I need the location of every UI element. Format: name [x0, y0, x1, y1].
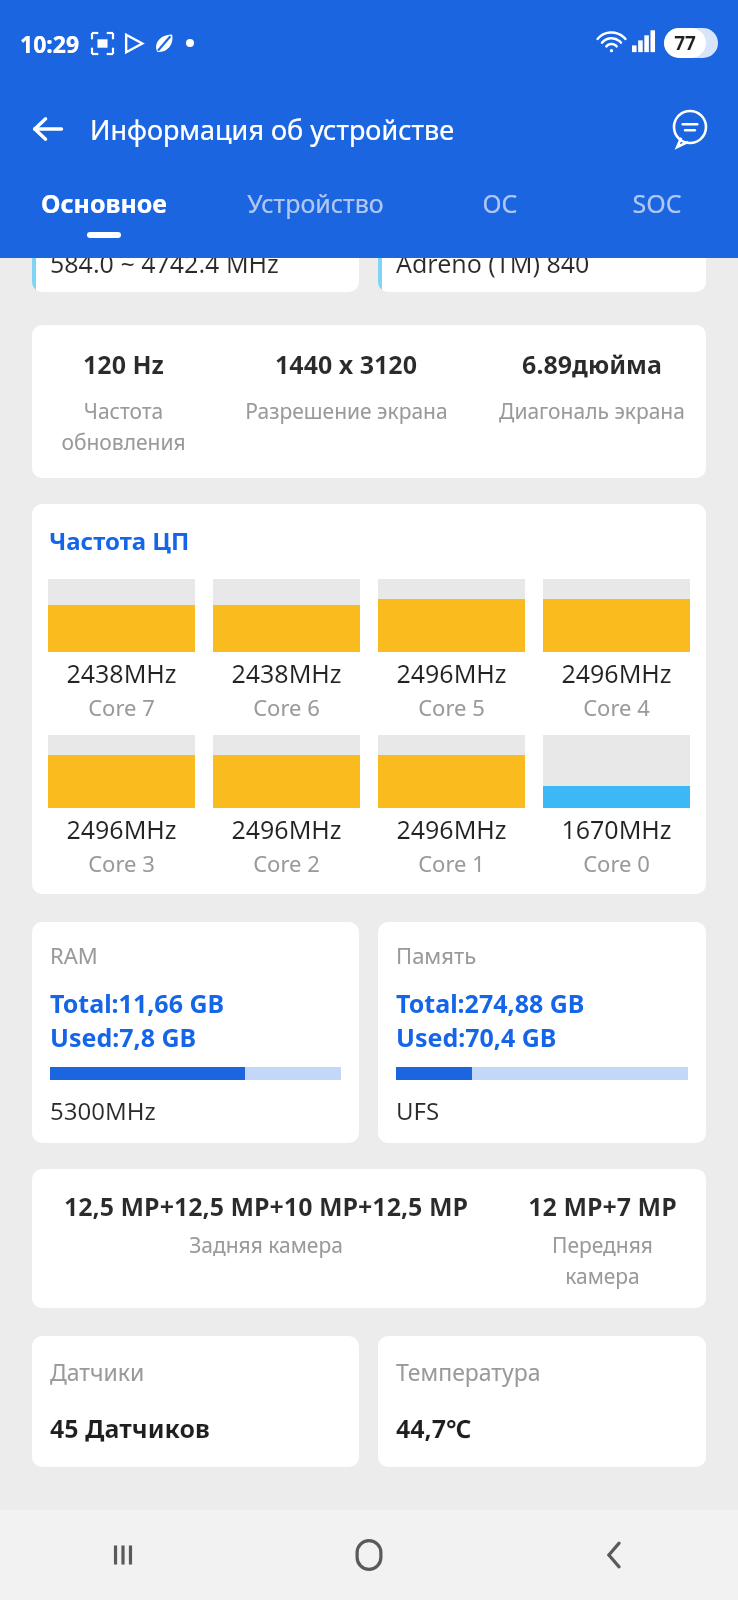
button[interactable]: 12,5 MP+12,5 MP+10 MP+12,5 MP — [32, 1169, 706, 1308]
staticText: Память — [396, 940, 477, 970]
staticText: 10:29 — [20, 28, 80, 59]
staticText: 2496MHz — [561, 656, 672, 690]
button[interactable]: Главный экран — [246, 1510, 492, 1600]
staticText: RAM — [50, 940, 98, 970]
staticText: Adreno (TM) 840 — [396, 258, 590, 280]
staticText: 1670MHz — [561, 812, 672, 846]
staticText: Core 1 — [418, 848, 485, 878]
staticText: UFS — [396, 1094, 440, 1127]
staticText: Задняя камера — [189, 1231, 343, 1260]
staticText: Core 0 — [583, 848, 650, 878]
staticText: Диагональ экрана — [499, 397, 685, 426]
staticText: SOC — [632, 186, 682, 220]
staticText: Core 3 — [88, 848, 155, 878]
staticText: 2496MHz — [396, 812, 507, 846]
staticText: Датчики — [50, 1356, 145, 1387]
staticText: Информация об устройстве — [90, 111, 455, 148]
staticText: 6.89дюйма — [522, 347, 662, 381]
button[interactable]: Устройство — [207, 172, 423, 258]
button[interactable]: Температура — [378, 1336, 706, 1467]
button[interactable]: Основное — [0, 172, 207, 258]
staticText: 45 Датчиков — [50, 1411, 210, 1445]
button[interactable]: Назад — [492, 1510, 738, 1600]
staticText: Total:274,88 GB — [396, 986, 585, 1020]
button[interactable]: RAM — [32, 922, 359, 1143]
staticText: 1440 x 3120 — [275, 347, 417, 381]
staticText: Разрешение экрана — [245, 397, 448, 426]
staticText: Частота ЦП — [49, 524, 190, 557]
staticText: 2496MHz — [66, 812, 177, 846]
staticText: Устройство — [247, 186, 384, 220]
staticText: Core 6 — [253, 692, 320, 722]
button[interactable]: Память — [378, 922, 706, 1143]
staticText: 12,5 MP+12,5 MP+10 MP+12,5 MP — [64, 1189, 468, 1223]
staticText: Температура — [396, 1356, 541, 1387]
staticText: Core 2 — [253, 848, 320, 878]
button[interactable]: ОС — [423, 172, 576, 258]
button[interactable]: Частота ЦП — [32, 504, 706, 894]
staticText: 2438MHz — [231, 656, 342, 690]
staticText: Core 4 — [583, 692, 650, 722]
button[interactable]: Датчики — [32, 1336, 359, 1467]
staticText: 2496MHz — [231, 812, 342, 846]
staticText: 120 Hz — [83, 347, 164, 381]
staticText: Used:7,8 GB — [50, 1020, 197, 1054]
button[interactable]: Adreno (TM) 840 — [378, 258, 706, 292]
button[interactable]: SOC — [576, 172, 738, 258]
staticText: 12 MP+7 MP — [528, 1189, 677, 1223]
staticText: Частота обновления — [61, 397, 186, 456]
staticText: 2438MHz — [66, 656, 177, 690]
staticText: 584.0 ~ 4742.4 MHz — [50, 258, 279, 280]
staticText: Core 5 — [418, 692, 485, 722]
staticText: 44,7℃ — [396, 1411, 472, 1445]
button[interactable]: Отзыв — [664, 103, 716, 155]
staticText: Total:11,66 GB — [50, 986, 225, 1020]
staticText: Передняя камера — [552, 1231, 653, 1290]
staticText: Core 7 — [88, 692, 155, 722]
button[interactable]: 584.0 ~ 4742.4 MHz — [32, 258, 359, 292]
staticText: 77 — [664, 30, 706, 56]
staticText: ОС — [482, 186, 518, 220]
button[interactable]: Недавние — [0, 1510, 246, 1600]
button[interactable]: Назад — [22, 103, 74, 155]
button[interactable]: 120 Hz — [32, 325, 706, 478]
staticText: Used:70,4 GB — [396, 1020, 557, 1054]
staticText: 5300MHz — [50, 1094, 156, 1127]
staticText: 2496MHz — [396, 656, 507, 690]
staticText: Основное — [41, 186, 167, 220]
